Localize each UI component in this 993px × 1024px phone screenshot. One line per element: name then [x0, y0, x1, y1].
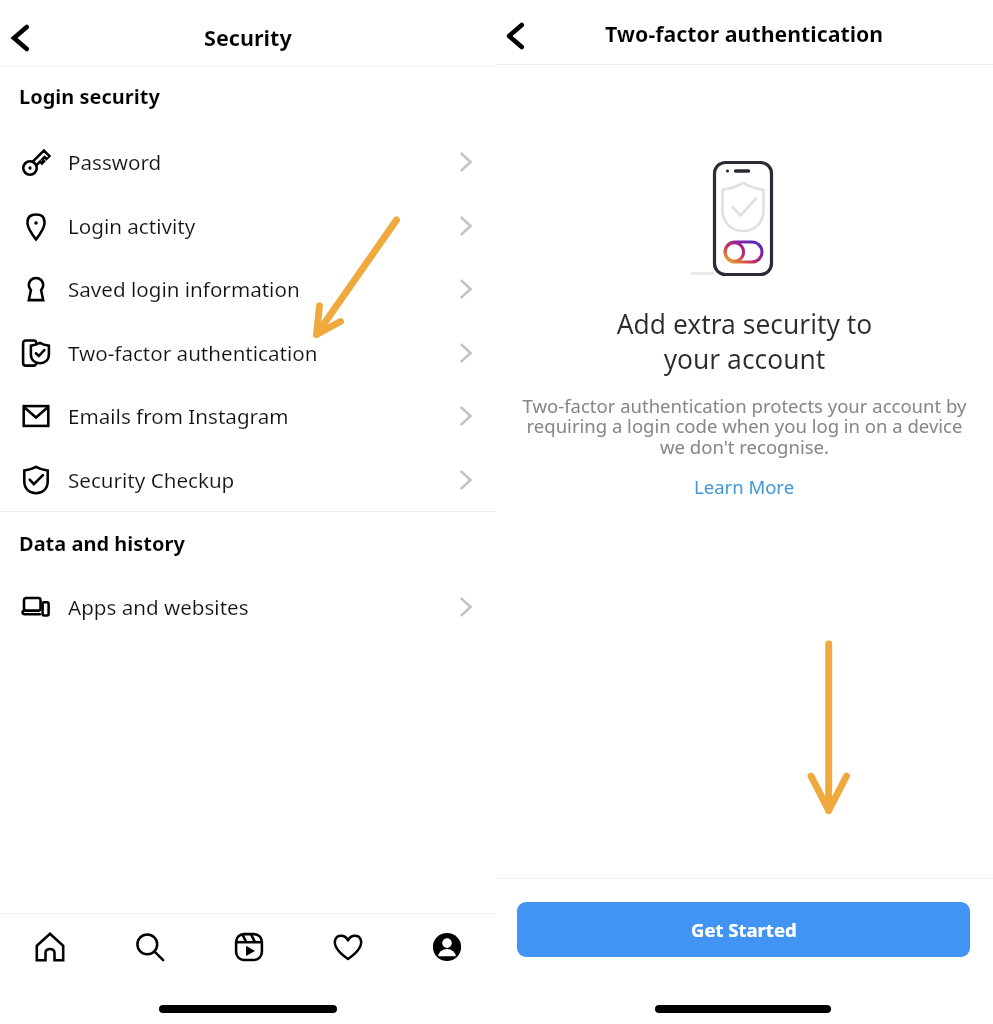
staticText: Data and history — [19, 530, 185, 557]
staticText: Login security — [19, 83, 160, 110]
staticText: Two-factor authentication protects your … — [496, 393, 993, 460]
staticText: Saved login information — [68, 275, 300, 303]
button[interactable]: Security Checkup — [0, 449, 496, 511]
staticText: Two-factor authentication — [68, 339, 318, 367]
button[interactable]: Apps and websites — [0, 576, 496, 638]
button[interactable]: Get Started — [517, 902, 970, 957]
button[interactable]: Back — [492, 13, 538, 59]
staticText: Apps and websites — [68, 593, 249, 621]
staticText: Security — [204, 23, 292, 52]
staticText: Emails from Instagram — [68, 402, 289, 430]
staticText: Login activity — [68, 212, 196, 240]
button[interactable]: Emails from Instagram — [0, 385, 496, 447]
button[interactable]: Password — [0, 131, 496, 193]
staticText: Two-factor authentication — [605, 19, 884, 48]
button[interactable]: Two-factor authentication — [0, 322, 496, 384]
staticText: Add extra security to your account — [496, 306, 993, 377]
staticText: Learn More — [694, 474, 795, 499]
button[interactable]: Activity — [298, 914, 397, 980]
button[interactable]: Reels — [199, 914, 298, 980]
button[interactable]: Home — [0, 914, 100, 980]
button[interactable]: Profile — [397, 914, 496, 980]
staticText: Get Started — [691, 917, 797, 942]
button[interactable]: Learn More — [678, 468, 811, 505]
button[interactable]: Search — [100, 914, 199, 980]
button[interactable]: Login activity — [0, 195, 496, 257]
staticText: Password — [68, 148, 162, 176]
button[interactable]: Back — [0, 15, 43, 61]
staticText: Security Checkup — [68, 466, 235, 494]
button[interactable]: Saved login information — [0, 258, 496, 320]
